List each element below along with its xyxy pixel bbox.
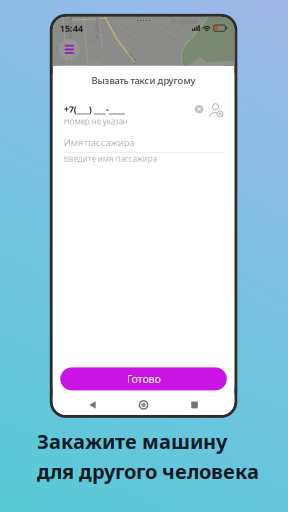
staticText: Готово xyxy=(126,372,160,386)
button[interactable]: Home xyxy=(118,396,169,414)
staticText: Закажите машину xyxy=(37,428,227,455)
staticText: Введите имя пассажира xyxy=(64,153,157,164)
staticText: ул. Ленина xyxy=(171,18,197,25)
button[interactable]: Готово xyxy=(60,367,227,390)
staticText: Вызвать такси другому xyxy=(91,74,195,87)
staticText: для другого человека xyxy=(37,458,259,485)
staticText: ул. Ра xyxy=(127,55,140,62)
staticText: ул. Дачная xyxy=(84,23,110,30)
staticText: Номер не указан xyxy=(64,116,128,127)
staticText: 15:44 xyxy=(60,22,83,34)
staticText: Имя пассажира xyxy=(64,136,135,149)
button[interactable]: Recents xyxy=(169,396,220,414)
button[interactable]: Menu xyxy=(59,39,80,60)
button[interactable]: Pick from contacts xyxy=(209,103,223,117)
staticText: ул. Речная xyxy=(58,23,83,30)
button[interactable]: Back xyxy=(67,396,118,414)
button[interactable]: Clear number xyxy=(195,105,203,113)
staticText: +7(___) ___-____ xyxy=(64,103,125,115)
